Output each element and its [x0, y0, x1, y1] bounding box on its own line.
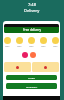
staticText: Item: [41, 45, 46, 48]
staticText: Free delivery: [23, 28, 41, 32]
button[interactable]: [32, 62, 59, 72]
staticText: Item: [29, 45, 34, 48]
staticText: 7:48: [28, 2, 36, 7]
button[interactable]: Free delivery: [4, 24, 59, 33]
staticText: Delivery: [24, 8, 40, 13]
button[interactable]: category: [52, 37, 59, 48]
button[interactable]: category: [40, 37, 47, 48]
button[interactable]: category: [4, 37, 11, 48]
staticText: Item: [5, 45, 10, 48]
staticText: Order: [28, 76, 35, 79]
button[interactable]: [4, 62, 31, 72]
button[interactable]: category: [28, 37, 35, 48]
staticText: Item: [53, 45, 58, 48]
staticText: Checkout: [26, 85, 38, 88]
staticText: Item: [17, 45, 22, 48]
button[interactable]: Checkout: [6, 83, 57, 89]
button[interactable]: Order: [6, 75, 57, 80]
button[interactable]: category: [16, 37, 23, 48]
